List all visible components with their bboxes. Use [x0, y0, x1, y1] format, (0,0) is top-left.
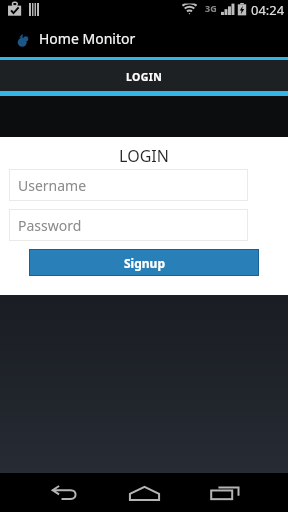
button[interactable]: Signup [29, 249, 259, 276]
staticText: LOGIN [126, 70, 163, 84]
staticText: Signup [124, 255, 165, 271]
staticText: LOGIN [0, 145, 288, 167]
staticText: Home Monitor [39, 29, 136, 48]
button[interactable]: LOGIN [0, 60, 288, 91]
button[interactable]: Recent apps [203, 478, 247, 508]
button[interactable]: Password [9, 209, 248, 241]
button[interactable]: Back [42, 478, 86, 508]
staticText: 04:24 [251, 1, 285, 19]
button[interactable]: Home [122, 478, 166, 508]
staticText: 3G [205, 2, 217, 14]
staticText: Password [18, 216, 82, 235]
staticText: Username [18, 176, 87, 195]
button[interactable]: Username [9, 169, 248, 201]
